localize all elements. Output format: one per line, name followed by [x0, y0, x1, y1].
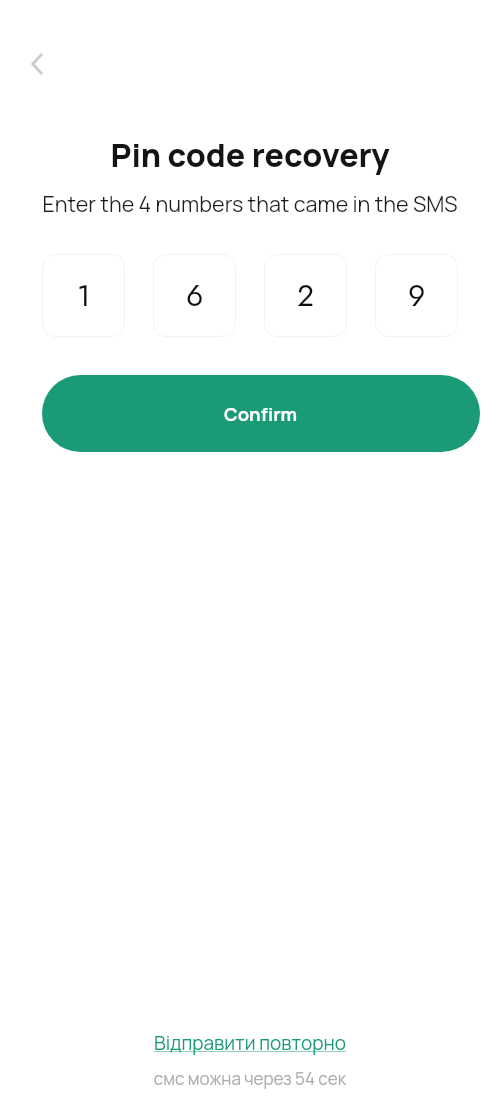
staticText: Confirm: [224, 401, 298, 426]
button[interactable]: Pin digit 6: [153, 254, 236, 337]
button[interactable]: Pin digit 2: [264, 254, 347, 337]
button[interactable]: Back: [16, 43, 58, 85]
staticText: Відправити повторно: [154, 1030, 346, 1056]
staticText: 2: [297, 274, 315, 317]
staticText: Pin code recovery: [0, 133, 500, 177]
staticText: Enter the 4 numbers that came in the SMS: [0, 189, 500, 218]
button[interactable]: Pin digit 1: [42, 254, 125, 337]
staticText: 9: [408, 274, 426, 317]
staticText: 1: [77, 274, 91, 317]
staticText: смс можна через 54 сек: [0, 1067, 500, 1090]
button[interactable]: Confirm: [42, 375, 480, 452]
button[interactable]: Відправити повторно: [148, 1028, 352, 1058]
staticText: 6: [186, 274, 204, 317]
button[interactable]: Pin digit 9: [375, 254, 458, 337]
